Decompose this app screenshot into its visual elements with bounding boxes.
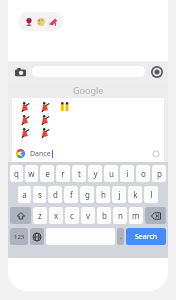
staticText: g [85, 189, 90, 200]
button[interactable]: c [65, 207, 79, 224]
button[interactable]: v [81, 207, 95, 224]
staticText: k [133, 189, 138, 200]
staticText: w [28, 168, 35, 179]
staticText: . [120, 232, 122, 242]
button[interactable]: . [117, 228, 124, 245]
button[interactable]: t [72, 165, 86, 182]
staticText: i [126, 168, 129, 179]
button[interactable]: Dance [16, 145, 160, 162]
staticText: u [109, 168, 114, 179]
button[interactable]: Clear [152, 150, 160, 158]
button[interactable]: f [64, 186, 78, 203]
staticText: e [45, 168, 50, 179]
button[interactable]: Shift [10, 207, 31, 224]
staticText: q [14, 168, 19, 179]
button[interactable]: Camera [13, 65, 27, 79]
button[interactable] [31, 65, 146, 78]
button[interactable]: o [136, 165, 150, 182]
button[interactable]: d [48, 186, 62, 203]
button[interactable]: m [129, 207, 143, 224]
button[interactable]: n [113, 207, 127, 224]
button[interactable]: s [33, 186, 46, 203]
staticText: Search [135, 232, 158, 242]
button[interactable]: u [104, 165, 118, 182]
staticText: v [86, 210, 91, 221]
button[interactable]: g [80, 186, 94, 203]
button[interactable]: a [18, 186, 31, 203]
staticText: j [118, 189, 121, 200]
staticText: h [101, 189, 106, 200]
button[interactable]: Change keyboard [30, 228, 44, 245]
staticText: s [38, 189, 42, 200]
button[interactable]: Backspace [145, 207, 166, 224]
button[interactable]: r [56, 165, 70, 182]
button[interactable]: Send [150, 65, 163, 78]
staticText: t [78, 168, 81, 179]
button[interactable]: w [25, 165, 38, 182]
staticText: c [70, 210, 74, 221]
staticText: y [93, 168, 98, 179]
button[interactable]: b [97, 207, 111, 224]
button[interactable]: 123 [10, 228, 28, 245]
staticText: m [132, 210, 140, 221]
button[interactable]: x [49, 207, 63, 224]
button[interactable]: q [10, 165, 23, 182]
button[interactable]: y [88, 165, 102, 182]
staticText: z [38, 210, 42, 221]
staticText: p [157, 168, 162, 179]
staticText: r [61, 168, 65, 179]
staticText: Dance [30, 149, 51, 159]
button[interactable]: i [120, 165, 134, 182]
staticText: Google [73, 84, 104, 96]
staticText: l [150, 189, 153, 200]
button[interactable]: j [112, 186, 126, 203]
staticText: f [70, 189, 73, 200]
button[interactable]: p [152, 165, 166, 182]
button[interactable]: k [128, 186, 142, 203]
button[interactable]: e [40, 165, 54, 182]
staticText: n [118, 210, 123, 221]
staticText: b [102, 210, 107, 221]
staticText: x [54, 210, 59, 221]
button[interactable] [18, 12, 63, 31]
button[interactable]: h [96, 186, 110, 203]
staticText: o [141, 168, 146, 179]
button[interactable]: l [144, 186, 158, 203]
button[interactable]: Search [126, 228, 166, 245]
staticText: 123 [14, 233, 25, 241]
staticText: a [22, 189, 27, 200]
staticText: d [53, 189, 58, 200]
button[interactable]: z [33, 207, 47, 224]
